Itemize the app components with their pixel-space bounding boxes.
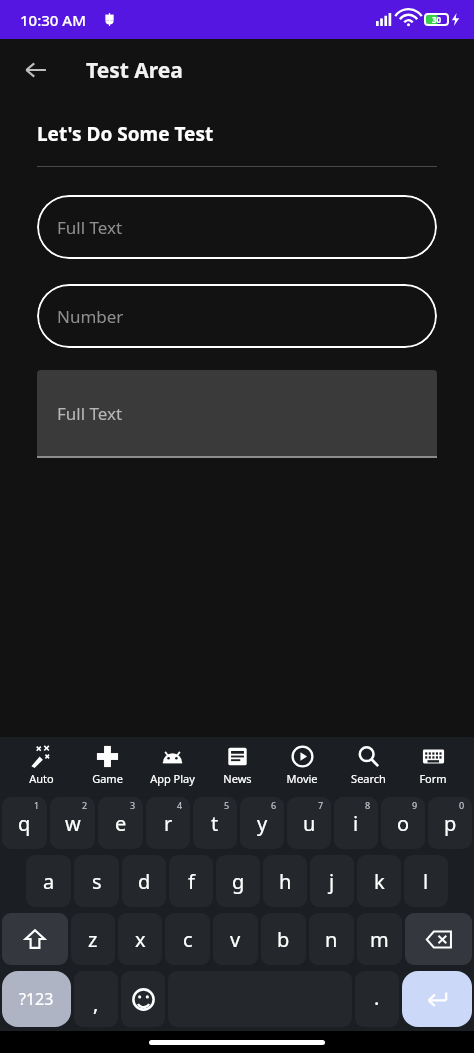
staticText: Search <box>351 771 386 786</box>
button[interactable]: m <box>357 913 402 965</box>
staticText: News <box>223 771 252 786</box>
staticText: a <box>43 868 55 895</box>
staticText: e <box>115 810 127 837</box>
button[interactable]: y <box>240 797 284 849</box>
staticText: s <box>92 868 102 895</box>
staticText: u <box>303 810 316 837</box>
staticText: o <box>397 810 410 837</box>
button[interactable]: a <box>26 855 71 907</box>
staticText: 2 <box>82 799 88 811</box>
button[interactable]: . <box>355 971 399 1027</box>
staticText: r <box>164 810 173 837</box>
staticText: 9 <box>412 799 418 811</box>
button[interactable]: Movie <box>272 745 332 786</box>
button[interactable]: , <box>74 971 118 1027</box>
staticText: x <box>135 926 146 953</box>
button[interactable]: Number <box>37 284 437 348</box>
staticText: Game <box>92 771 123 786</box>
staticText: Auto <box>29 771 54 786</box>
button[interactable]: Game <box>77 745 137 786</box>
staticText: App Play <box>150 771 195 786</box>
staticText: 6 <box>271 799 277 811</box>
staticText: ?123 <box>19 988 54 1010</box>
staticText: Full Text <box>57 402 123 425</box>
button[interactable]: Full Text <box>37 195 437 259</box>
button[interactable]: x <box>118 913 162 965</box>
staticText: 30 <box>432 14 442 25</box>
button[interactable]: w <box>50 797 95 849</box>
button[interactable]: h <box>263 855 307 907</box>
staticText: m <box>370 926 389 953</box>
staticText: w <box>65 810 81 837</box>
staticText: 8 <box>365 799 371 811</box>
staticText: z <box>88 926 98 953</box>
staticText: g <box>232 868 245 895</box>
button[interactable]: d <box>122 855 166 907</box>
button[interactable]: Back <box>14 48 58 92</box>
button[interactable]: ?123 <box>2 971 71 1027</box>
staticText: 7 <box>318 799 324 811</box>
staticText: f <box>188 868 195 895</box>
staticText: . <box>374 984 380 1011</box>
button[interactable]: Full Text <box>37 370 437 456</box>
staticText: v <box>230 926 241 953</box>
button[interactable]: v <box>213 913 258 965</box>
button[interactable]: t <box>193 797 237 849</box>
staticText: y <box>257 810 268 837</box>
staticText: Form <box>419 771 447 786</box>
staticText: 4 <box>177 799 183 811</box>
button[interactable]: Emoji <box>121 971 165 1027</box>
staticText: k <box>374 868 385 895</box>
staticText: 5 <box>224 799 230 811</box>
staticText: Test Area <box>86 56 183 85</box>
staticText: 3 <box>130 799 136 811</box>
staticText: i <box>353 810 359 837</box>
staticText: Full Text <box>57 216 123 239</box>
button[interactable]: g <box>216 855 260 907</box>
button[interactable]: q <box>2 797 47 849</box>
staticText: Movie <box>286 771 318 786</box>
staticText: q <box>18 810 31 837</box>
button[interactable]: f <box>169 855 213 907</box>
button[interactable]: b <box>261 913 306 965</box>
staticText: h <box>279 868 292 895</box>
button[interactable]: z <box>71 913 115 965</box>
button[interactable]: Auto <box>11 745 71 786</box>
button[interactable]: Backspace <box>405 913 472 965</box>
button[interactable]: u <box>287 797 331 849</box>
staticText: c <box>183 926 193 953</box>
staticText: , <box>93 990 99 1017</box>
button[interactable]: Search <box>338 745 398 786</box>
staticText: p <box>444 810 457 837</box>
button[interactable]: e <box>98 797 143 849</box>
button[interactable]: i <box>334 797 378 849</box>
staticText: b <box>277 926 290 953</box>
staticText: j <box>329 868 335 895</box>
button[interactable]: News <box>207 745 267 786</box>
button[interactable]: Shift <box>2 913 68 965</box>
staticText: t <box>211 810 219 837</box>
button[interactable]: o <box>381 797 425 849</box>
button[interactable]: r <box>146 797 190 849</box>
button[interactable]: c <box>165 913 210 965</box>
staticText: 0 <box>459 799 465 811</box>
button[interactable]: k <box>357 855 401 907</box>
button[interactable]: l <box>404 855 448 907</box>
button[interactable]: Form <box>403 745 463 786</box>
button[interactable]: App Play <box>142 745 202 786</box>
staticText: Let's Do Some Test <box>37 121 214 147</box>
staticText: 1 <box>34 799 40 811</box>
staticText: d <box>138 868 151 895</box>
staticText: 10:30 AM <box>20 10 86 30</box>
button[interactable]: n <box>309 913 354 965</box>
staticText: l <box>423 868 429 895</box>
staticText: Number <box>57 305 124 328</box>
staticText: n <box>325 926 338 953</box>
button[interactable]: s <box>74 855 119 907</box>
button[interactable]: j <box>310 855 354 907</box>
button[interactable]: p <box>428 797 472 849</box>
button[interactable]: Enter <box>402 971 472 1027</box>
